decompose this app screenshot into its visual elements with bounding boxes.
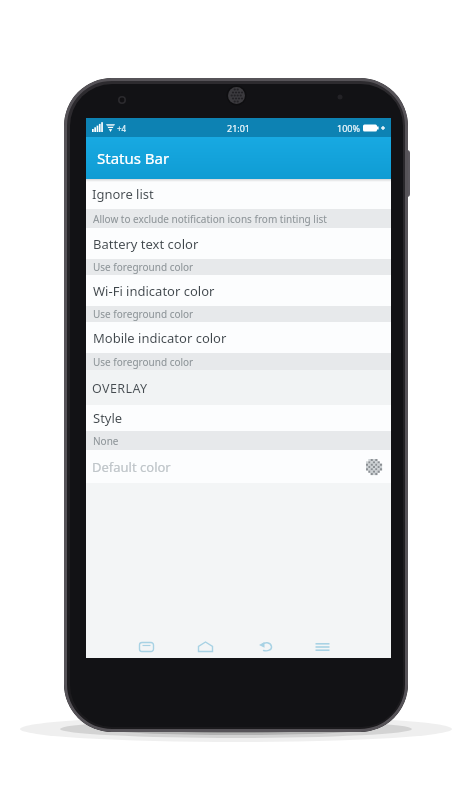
button[interactable]: Wi-Fi indicator color (86, 275, 391, 306)
staticText: Ignore list (92, 185, 154, 203)
staticText: Battery text color (93, 235, 199, 253)
button[interactable] (253, 634, 293, 658)
button[interactable]: Ignore list (86, 179, 391, 209)
staticText: OVERLAY (92, 380, 148, 397)
staticText: Mobile indicator color (93, 329, 227, 347)
button[interactable] (115, 634, 155, 658)
staticText: Use foreground color (93, 355, 194, 369)
staticText: 21:01 (227, 122, 251, 134)
staticText: 100% (337, 122, 360, 134)
button[interactable]: Mobile indicator color (86, 322, 391, 353)
button[interactable] (184, 634, 224, 658)
button[interactable]: Use foreground color (86, 259, 391, 275)
button[interactable] (322, 634, 362, 658)
staticText: +4 (117, 123, 127, 134)
button[interactable]: Style (86, 405, 391, 431)
button[interactable]: None (86, 431, 391, 450)
button[interactable]: Use foreground color (86, 306, 391, 322)
button[interactable]: Status Bar (86, 137, 391, 179)
staticText: Status Bar (97, 148, 170, 168)
staticText: Allow to exclude notification icons from… (93, 212, 327, 226)
button[interactable]: Use foreground color (86, 353, 391, 370)
staticText: None (93, 434, 119, 448)
staticText: Use foreground color (93, 260, 194, 274)
button[interactable]: Default color (86, 450, 391, 483)
staticText: Use foreground color (93, 307, 194, 321)
staticText: Style (93, 409, 123, 427)
button[interactable]: Allow to exclude notification icons from… (86, 209, 391, 228)
staticText: Wi-Fi indicator color (93, 282, 215, 300)
button[interactable]: Battery text color (86, 228, 391, 259)
staticText: Default color (92, 458, 171, 476)
